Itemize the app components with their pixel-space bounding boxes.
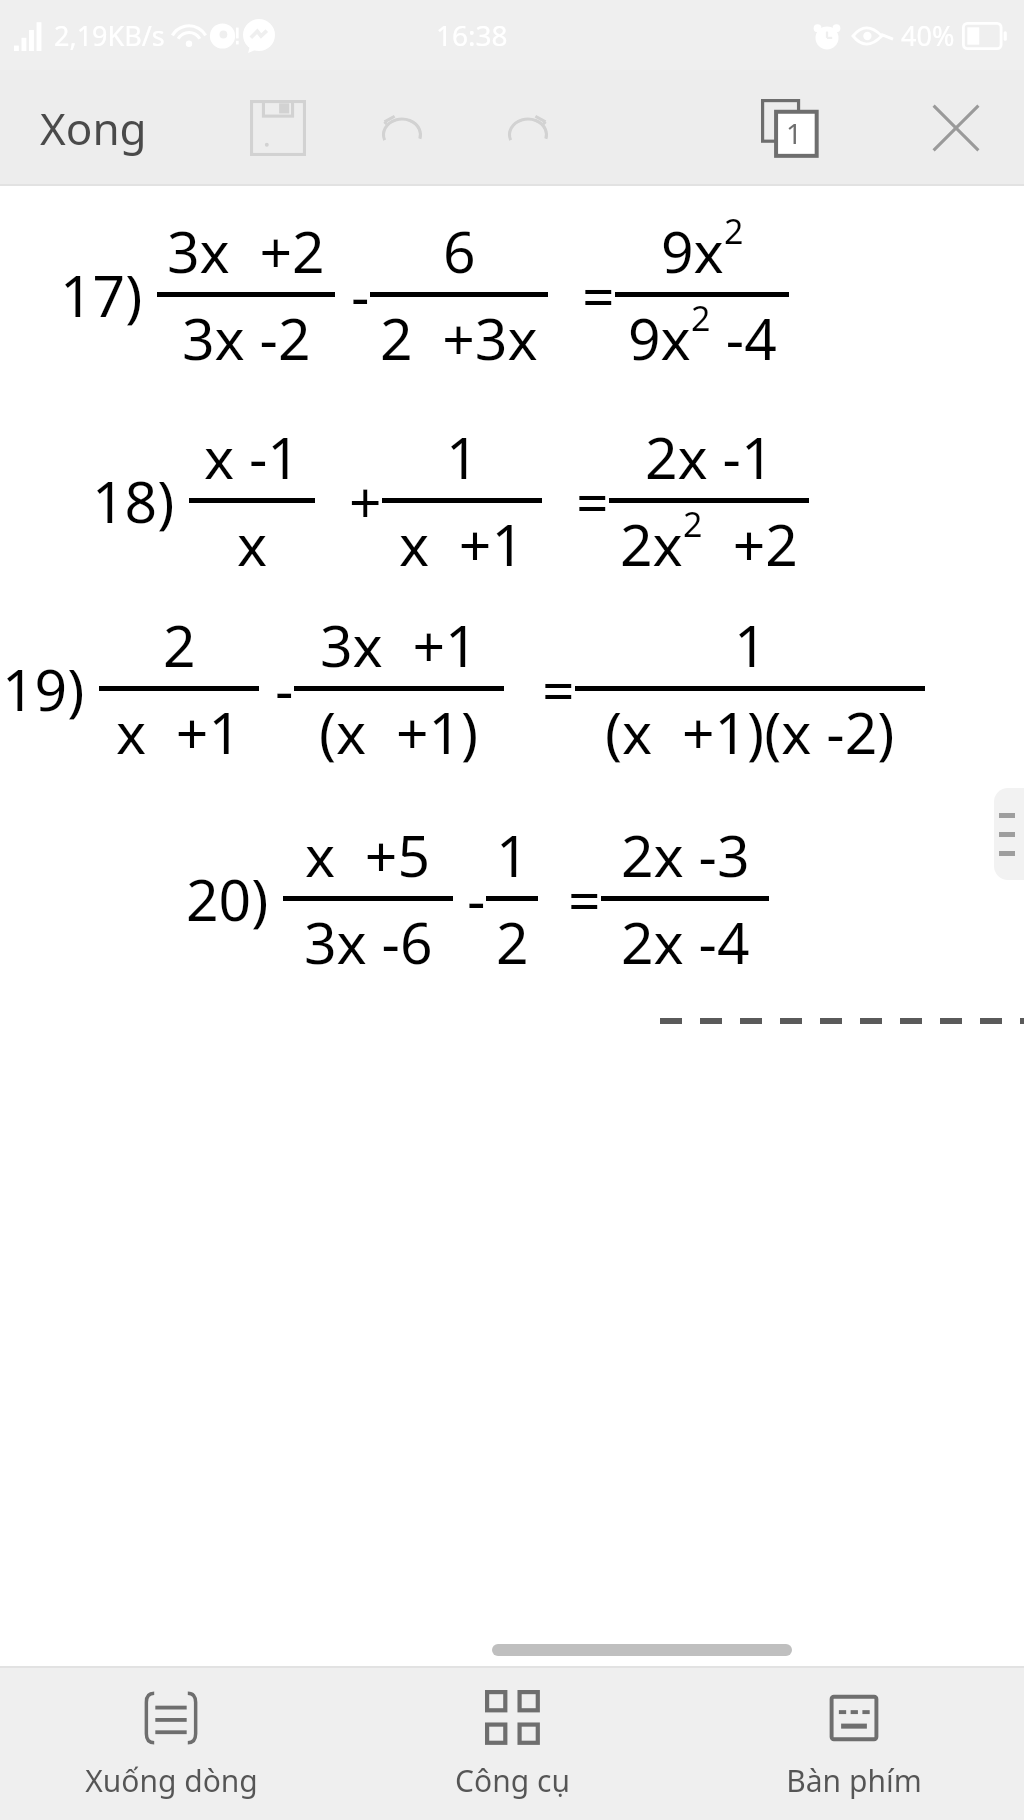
staticText: x +1 xyxy=(399,505,525,583)
staticText: x -1 xyxy=(204,418,300,496)
staticText: x +1 xyxy=(116,693,242,771)
button[interactable]: Xuống dòng xyxy=(0,1668,342,1820)
staticText: = xyxy=(582,256,615,334)
staticText: 2 xyxy=(496,903,529,981)
button[interactable]: Panel handle xyxy=(994,788,1024,880)
staticText: +2 xyxy=(703,505,798,583)
staticText: (x +1) xyxy=(319,693,479,771)
staticText: 1 xyxy=(734,606,767,684)
staticText: (x +1)(x -2) xyxy=(605,693,895,771)
staticText: 2 xyxy=(683,501,703,547)
staticText: - xyxy=(275,650,294,728)
staticText: 2x -3 xyxy=(621,816,750,894)
staticText: 40% xyxy=(901,17,955,54)
staticText: + xyxy=(349,462,382,540)
staticText: 2x -1 xyxy=(645,418,774,496)
staticText: 2 +3x xyxy=(380,299,538,377)
staticText: = xyxy=(576,462,609,540)
staticText: Bàn phím xyxy=(786,1760,922,1801)
staticText: 16:38 xyxy=(436,16,508,54)
button[interactable]: Bàn phím xyxy=(683,1668,1024,1820)
staticText: 19) xyxy=(2,650,85,728)
staticText: 1 xyxy=(446,418,479,496)
staticText: 18) xyxy=(92,462,175,540)
staticText: Xong xyxy=(40,98,147,158)
staticText: 2x -4 xyxy=(621,903,750,981)
button[interactable]: Close xyxy=(906,78,1006,178)
staticText: 2 xyxy=(163,606,196,684)
staticText: Xuống dòng xyxy=(85,1760,258,1801)
button[interactable]: Save xyxy=(228,78,328,178)
staticText: -4 xyxy=(711,299,777,377)
staticText: 9x xyxy=(661,212,724,290)
staticText: 3x -6 xyxy=(304,903,433,981)
staticText: 9x xyxy=(628,299,691,377)
staticText: 3x +1 xyxy=(320,606,478,684)
button[interactable]: Pages xyxy=(740,78,840,178)
staticText: 20) xyxy=(186,860,269,938)
staticText: 3x +2 xyxy=(167,212,325,290)
staticText: 1 xyxy=(496,816,529,894)
staticText: x xyxy=(237,505,268,583)
staticText: = xyxy=(568,860,601,938)
button[interactable]: Xong xyxy=(18,84,169,172)
staticText: 1 xyxy=(786,114,803,152)
staticText: 2 xyxy=(691,295,711,341)
staticText: = xyxy=(542,650,575,728)
staticText: - xyxy=(467,860,486,938)
button[interactable]: Redo xyxy=(478,78,578,178)
staticText: - xyxy=(351,256,370,334)
staticText: 17) xyxy=(60,256,143,334)
staticText: Công cụ xyxy=(455,1760,570,1801)
staticText: 2x xyxy=(620,505,683,583)
staticText: 2 xyxy=(724,208,744,254)
button[interactable]: Undo xyxy=(352,78,452,178)
button[interactable]: Công cụ xyxy=(342,1668,683,1820)
staticText: 6 xyxy=(443,212,476,290)
staticText: 3x -2 xyxy=(182,299,311,377)
staticText: 2,19KB/s xyxy=(54,17,165,54)
staticText: x +5 xyxy=(305,816,431,894)
